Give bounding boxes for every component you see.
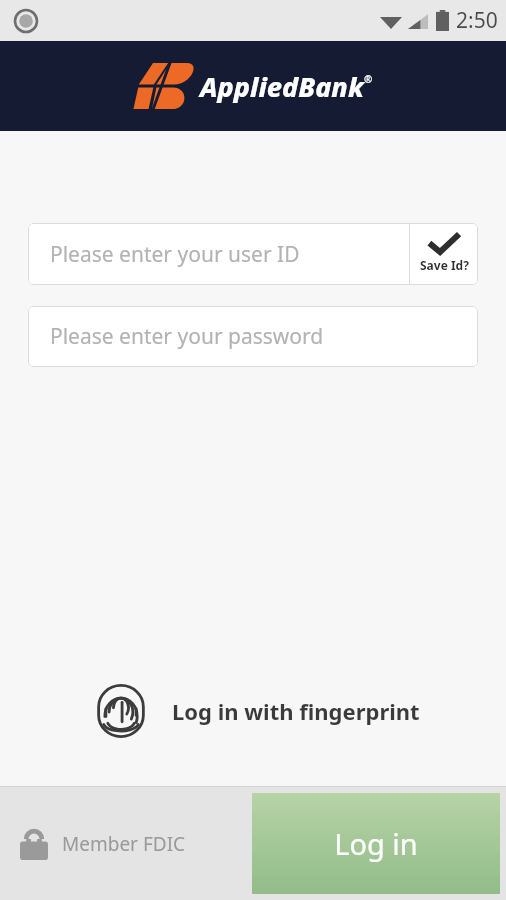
staticText: Please enter your password — [50, 322, 324, 351]
staticText: Please enter your user ID — [50, 240, 300, 269]
staticText: AppliedBank — [200, 68, 364, 105]
staticText: 2:50 — [456, 6, 498, 35]
button[interactable]: Please enter your password — [28, 306, 478, 367]
staticText: ® — [364, 72, 373, 86]
staticText: Log in with fingerprint — [172, 696, 420, 726]
button[interactable]: Log in with fingerprint — [60, 684, 446, 738]
button[interactable]: Log in — [252, 793, 500, 894]
button[interactable]: Member FDIC — [20, 828, 186, 860]
button[interactable]: Please enter your user ID — [28, 223, 409, 285]
staticText: Save Id? — [420, 257, 469, 273]
staticText: Log in — [334, 824, 418, 863]
staticText: Member FDIC — [62, 831, 186, 857]
button[interactable]: Save Id — [410, 223, 478, 285]
